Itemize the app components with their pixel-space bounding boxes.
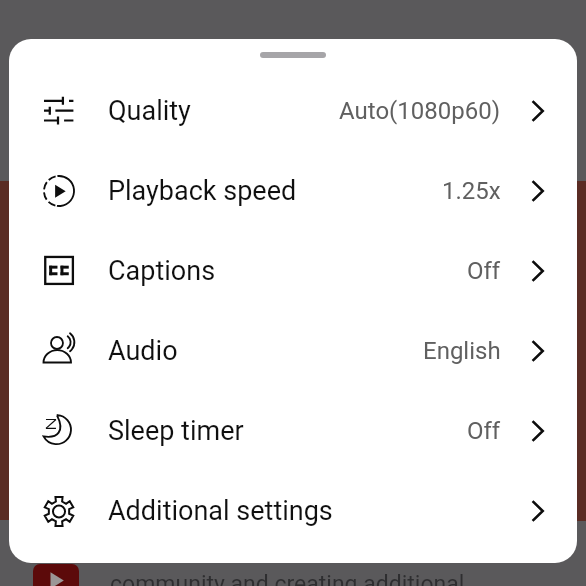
button[interactable]: Sleep timer [9,391,577,471]
staticText: community and creating additional [110,571,465,586]
button[interactable]: Quality [9,71,577,151]
staticText: Captions [108,255,216,287]
button[interactable]: Audio [9,311,577,391]
staticText: 1.25x [442,177,501,205]
staticText: Quality [108,95,191,127]
button[interactable]: Captions [9,231,577,311]
staticText: Additional settings [108,495,333,527]
staticText: Auto(1080p60) [339,97,501,125]
button[interactable]: Playback speed [9,151,577,231]
button[interactable]: Additional settings [9,471,577,551]
staticText: Off [467,257,501,285]
staticText: Off [467,417,501,445]
staticText: Playback speed [108,175,297,207]
staticText: English [423,337,501,365]
staticText: Sleep timer [108,415,244,447]
staticText: Audio [108,335,178,367]
